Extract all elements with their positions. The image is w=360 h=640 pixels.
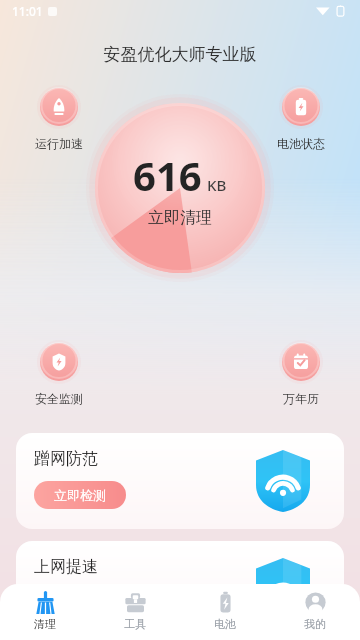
staticText: 11:01 <box>12 3 43 19</box>
button[interactable]: 上网提速 <box>16 541 344 637</box>
staticText: 运行加速 <box>35 136 83 151</box>
staticText: 万年历 <box>283 391 319 406</box>
button[interactable]: 蹭网防范 <box>16 433 344 529</box>
button[interactable]: 安全监测 <box>22 338 96 408</box>
staticText: 立即清理 <box>148 208 212 228</box>
staticText: KB <box>207 175 227 195</box>
button[interactable]: 运行加速 <box>22 83 96 153</box>
button[interactable]: 立即检测 <box>34 481 126 509</box>
button[interactable]: 清理 <box>0 584 90 640</box>
staticText: 616 <box>133 148 202 202</box>
button[interactable]: 616 <box>86 94 274 282</box>
button[interactable]: 电池状态 <box>264 83 338 153</box>
staticText: 电池 <box>214 617 236 631</box>
staticText: 上网提速 <box>34 557 98 577</box>
staticText: 工具 <box>124 617 146 631</box>
staticText: 清理 <box>34 617 56 631</box>
button[interactable]: 工具 <box>90 584 180 640</box>
staticText: 立即检测 <box>54 487 106 503</box>
staticText: 电池状态 <box>277 136 325 151</box>
staticText: 蹭网防范 <box>34 449 98 469</box>
button[interactable]: 万年历 <box>264 338 338 408</box>
staticText: 我的 <box>304 617 326 631</box>
button[interactable]: 我的 <box>270 584 360 640</box>
button[interactable]: 电池 <box>180 584 270 640</box>
staticText: 安全监测 <box>35 391 83 406</box>
staticText: 安盈优化大师专业版 <box>0 44 360 65</box>
